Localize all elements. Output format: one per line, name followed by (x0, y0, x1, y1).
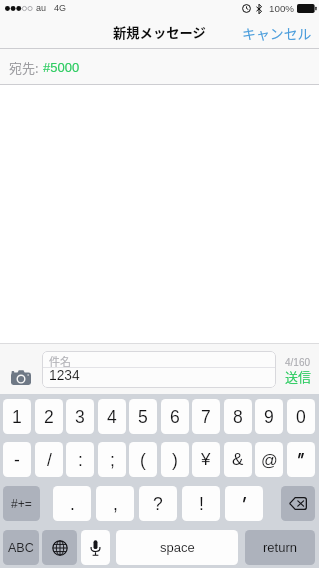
button[interactable]: 送信 (285, 367, 312, 386)
staticText: 6 (170, 407, 180, 427)
staticText: キャンセル (242, 23, 312, 43)
staticText: 100% (269, 3, 295, 14)
staticText: - (14, 450, 20, 470)
button[interactable]: space (116, 530, 238, 565)
staticText: #5000 (43, 60, 80, 75)
staticText: ¥ (201, 450, 211, 469)
button[interactable]: 3 (66, 399, 94, 434)
staticText: 8 (233, 407, 243, 427)
button[interactable]: 6 (161, 399, 189, 434)
button[interactable]: ; (98, 442, 126, 477)
button[interactable]: @ (255, 442, 283, 477)
staticText: ? (153, 494, 163, 514)
staticText: 1234 (49, 368, 80, 383)
staticText: 9 (264, 407, 274, 427)
button[interactable]: ¥ (192, 442, 220, 477)
staticText: ) (172, 450, 178, 470)
staticText: / (47, 450, 52, 470)
staticText: 送信 (285, 367, 312, 386)
staticText: 2 (44, 407, 54, 427)
staticText: 件名 (49, 353, 71, 369)
button[interactable]: : (66, 442, 94, 477)
button[interactable]: , (96, 486, 134, 521)
staticText: return (263, 540, 297, 555)
button[interactable]: #+= (3, 486, 40, 521)
button[interactable]: 2 (35, 399, 63, 434)
button[interactable]: 0 (287, 399, 315, 434)
button[interactable]: - (3, 442, 31, 477)
staticText: & (232, 450, 244, 469)
button[interactable]: ! (182, 486, 220, 521)
staticText: 4G (54, 3, 67, 13)
staticText: space (160, 540, 195, 555)
staticText: ABC (8, 541, 34, 555)
button[interactable]: ) (161, 442, 189, 477)
staticText: #+= (11, 497, 32, 510)
button[interactable]: 1 (3, 399, 31, 434)
staticText: 宛先: (9, 58, 39, 77)
button[interactable]: 宛先: (0, 49, 319, 85)
button[interactable]: 7 (192, 399, 220, 434)
staticText: ( (140, 450, 146, 470)
staticText: ! (199, 494, 204, 514)
button[interactable]: ABC (3, 530, 39, 565)
staticText: : (78, 450, 83, 470)
staticText: @ (261, 451, 278, 469)
button[interactable]: 9 (255, 399, 283, 434)
staticText: ; (110, 450, 115, 470)
button[interactable] (225, 486, 263, 521)
button[interactable]: Change language (42, 530, 77, 565)
button[interactable]: ( (129, 442, 157, 477)
button[interactable]: Take photo (5, 364, 37, 390)
button[interactable] (287, 442, 315, 477)
staticText: 新規メッセージ (113, 23, 206, 42)
button[interactable]: キャンセル (232, 16, 319, 49)
button[interactable]: return (245, 530, 315, 565)
button[interactable]: & (224, 442, 252, 477)
staticText: . (70, 494, 75, 514)
staticText: 4/160 (285, 357, 311, 368)
button[interactable]: Dictation (81, 530, 110, 565)
staticText: , (113, 494, 118, 514)
button[interactable]: / (35, 442, 63, 477)
button[interactable]: 8 (224, 399, 252, 434)
button[interactable]: 件名 (42, 351, 276, 388)
staticText: 0 (296, 407, 306, 427)
staticText: 1 (12, 407, 22, 427)
staticText: au (36, 3, 47, 13)
staticText: 7 (201, 407, 211, 427)
staticText: 3 (75, 407, 85, 427)
button[interactable]: Backspace (281, 486, 315, 521)
staticText: 4 (107, 407, 117, 427)
staticText: 5 (138, 407, 148, 427)
button[interactable]: 5 (129, 399, 157, 434)
button[interactable]: . (53, 486, 91, 521)
button[interactable]: 4 (98, 399, 126, 434)
button[interactable]: ? (139, 486, 177, 521)
